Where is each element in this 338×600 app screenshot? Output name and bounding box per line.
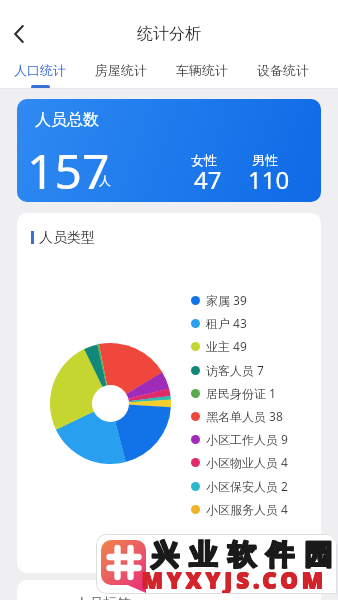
staticText: 统计分析 xyxy=(137,24,201,44)
staticText: 人员总数 xyxy=(35,110,99,130)
staticText: 女性 xyxy=(191,152,217,168)
staticText: 110 xyxy=(248,163,290,196)
staticText: 人员类型 xyxy=(39,229,95,247)
staticText: 小区保安人员 2 xyxy=(206,478,288,494)
staticText: MYXYJS.COM xyxy=(142,564,328,594)
staticText: 设备统计 xyxy=(257,62,309,78)
staticText: 兴业软件园 xyxy=(146,537,337,572)
button[interactable]: 设备统计 xyxy=(257,55,309,84)
button[interactable]: 房屋统计 xyxy=(95,55,147,84)
staticText: MYXYJS.COM xyxy=(142,565,328,594)
staticText: 业主 49 xyxy=(206,338,247,354)
staticText: 兴业软件园 xyxy=(146,537,337,572)
staticText: 车辆统计 xyxy=(176,62,228,78)
staticText: MYXYJS.COM xyxy=(141,564,327,594)
staticText: 居民身份证 1 xyxy=(206,385,276,401)
staticText: 人员标签 xyxy=(75,595,131,600)
button[interactable]: 人员总数 xyxy=(17,99,321,202)
staticText: 小区物业人员 4 xyxy=(206,454,288,470)
staticText: MYXYJS.COM xyxy=(142,565,328,594)
staticText: 家属 39 xyxy=(206,292,247,308)
staticText: 小区工作人员 9 xyxy=(206,431,288,447)
staticText: 访客人员 7 xyxy=(206,362,264,378)
staticText: 兴业软件园 xyxy=(146,538,337,573)
staticText: MYXYJS.COM xyxy=(141,565,327,594)
button[interactable] xyxy=(10,24,30,44)
staticText: 兴业软件园 xyxy=(145,538,337,573)
staticText: 房屋统计 xyxy=(95,62,147,78)
staticText: 小区服务人员 4 xyxy=(206,501,288,517)
button[interactable]: 人口统计 xyxy=(14,55,66,84)
staticText: 黑名单人员 38 xyxy=(206,408,283,424)
staticText: 人 xyxy=(99,173,111,188)
staticText: 47 xyxy=(194,163,222,196)
staticText: 兴业软件园 xyxy=(145,537,337,572)
staticText: 157 xyxy=(27,138,110,202)
staticText: 租户 43 xyxy=(206,315,247,331)
staticText: 人口统计 xyxy=(14,62,66,78)
staticText: 兴业软件园 xyxy=(146,538,337,573)
button[interactable]: 车辆统计 xyxy=(176,55,228,84)
staticText: MYXYJS.COM xyxy=(142,564,328,594)
staticText: 男性 xyxy=(252,152,278,168)
